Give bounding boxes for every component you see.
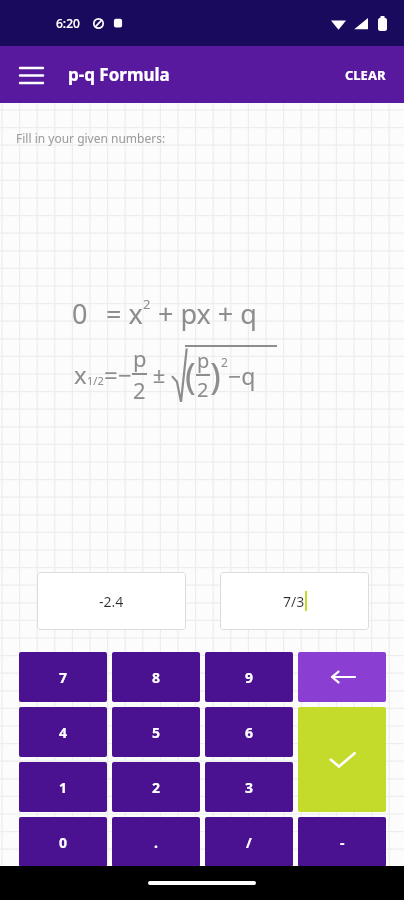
staticText: Fill in your given numbers:	[16, 130, 166, 146]
staticText: 1/2	[87, 373, 104, 388]
staticText: 5	[152, 723, 161, 742]
staticText: 2	[133, 375, 146, 405]
staticText: (	[185, 351, 196, 400]
staticText: -2.4	[99, 592, 124, 611]
staticText: p	[197, 347, 210, 374]
staticText: p-q Formula	[68, 63, 170, 86]
staticText: 3	[245, 778, 254, 797]
staticText: 0	[59, 833, 68, 852]
button[interactable]: /	[205, 817, 293, 867]
button[interactable]: 8	[112, 652, 200, 702]
button[interactable]: -	[298, 817, 386, 867]
staticText: 2	[221, 354, 228, 370]
staticText: 2	[152, 778, 161, 797]
staticText: 2	[197, 376, 209, 403]
button[interactable]: Confirm	[298, 707, 386, 812]
button[interactable]: 3	[205, 762, 293, 812]
staticText: 9	[245, 668, 254, 687]
button[interactable]: -2.4	[37, 572, 186, 630]
button[interactable]: 7/3	[220, 572, 369, 630]
button[interactable]: 4	[19, 707, 107, 757]
staticText: −q	[228, 360, 256, 391]
staticText: x	[74, 358, 87, 391]
button[interactable]: 6	[205, 707, 293, 757]
staticText: + px + q	[151, 295, 257, 332]
staticText: −	[118, 358, 132, 391]
staticText: 0	[72, 295, 88, 332]
button[interactable]: Backspace	[298, 652, 386, 702]
staticText: .	[154, 833, 158, 852]
button[interactable]: 1	[19, 762, 107, 812]
staticText: )	[210, 351, 221, 400]
button[interactable]: 9	[205, 652, 293, 702]
staticText: /	[246, 833, 252, 852]
staticText: 2	[143, 295, 151, 313]
staticText: = x	[106, 295, 143, 332]
staticText: 8	[152, 668, 161, 687]
button[interactable]: 2	[112, 762, 200, 812]
staticText: -	[340, 833, 345, 852]
button[interactable]: 5	[112, 707, 200, 757]
button[interactable]: 0	[19, 817, 107, 867]
button[interactable]: 7	[19, 652, 107, 702]
staticText: 4	[59, 723, 68, 742]
staticText: =	[104, 358, 118, 391]
staticText: 6	[245, 723, 254, 742]
staticText: ±	[147, 359, 172, 389]
staticText: 1	[59, 778, 68, 797]
button[interactable]: .	[112, 817, 200, 867]
staticText: 7/3	[283, 592, 305, 611]
staticText: p	[133, 343, 147, 373]
button[interactable]: Open navigation drawer	[8, 52, 54, 98]
button[interactable]: CLEAR	[333, 57, 398, 93]
staticText: 7	[59, 668, 68, 687]
staticText: 6:20	[56, 15, 80, 31]
staticText: CLEAR	[345, 66, 386, 84]
